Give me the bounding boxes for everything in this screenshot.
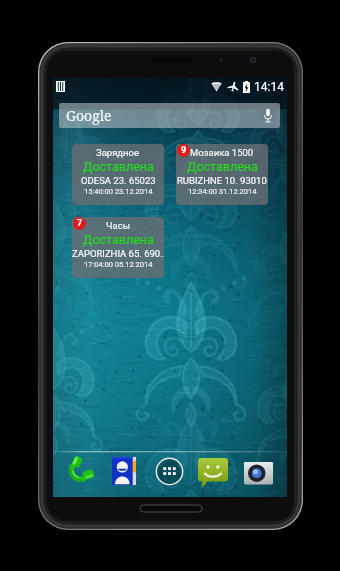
staticText: Часы	[106, 220, 131, 231]
button[interactable]: Contacts	[108, 455, 140, 487]
staticText: Доставлена	[187, 159, 258, 174]
other: Voice search	[263, 108, 273, 123]
button[interactable]: Apps	[153, 455, 185, 487]
button[interactable]: Зарядное	[72, 144, 164, 205]
staticText: 15:40:00 23.12.2014	[84, 187, 153, 196]
button[interactable]: Google	[59, 103, 280, 128]
staticText: Доставлена	[83, 159, 154, 174]
button[interactable]: Часы	[72, 217, 164, 278]
staticText: 14:14	[254, 80, 284, 94]
staticText: Доставлена	[83, 232, 154, 247]
button[interactable]: Мозаика 1500	[176, 144, 268, 205]
staticText: ODESA 23. 65023	[81, 175, 156, 186]
staticText: Мозаика 1500	[190, 147, 254, 158]
staticText: Google	[66, 106, 112, 125]
staticText: Зарядное	[96, 147, 140, 158]
button[interactable]: Camera	[242, 455, 274, 487]
staticText: 7	[77, 218, 83, 229]
staticText: 12:34:00 31.12.2014	[188, 187, 257, 196]
button[interactable]: Phone	[63, 455, 95, 487]
button[interactable]: Messaging	[197, 455, 229, 487]
staticText: ZAPORIZHIA 65. 690...	[72, 248, 164, 259]
staticText: 9	[181, 145, 187, 156]
staticText: 17:04:00 05.12.2014	[84, 260, 153, 269]
staticText: RUBIZHNE 10. 93010	[177, 175, 267, 186]
